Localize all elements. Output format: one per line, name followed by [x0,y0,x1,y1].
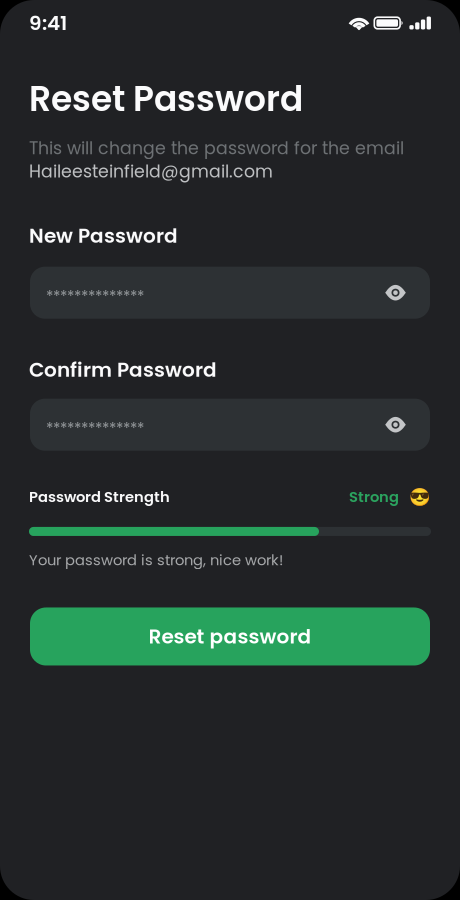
staticText: 😎 [399,485,431,509]
staticText: 9:41 [29,9,67,37]
staticText: Confirm Password [29,356,217,384]
staticText: Reset password [148,622,311,650]
staticText: Your password is strong, nice work! [29,550,283,570]
staticText: ************** [46,286,144,307]
button[interactable]: Show password [362,399,430,451]
staticText: Strong [349,487,399,507]
staticText: Password Strength [29,487,170,507]
staticText: This will change the password for the em… [29,136,404,160]
staticText: Haileesteinfield@gmail.com [29,159,273,184]
staticText: Reset Password [29,75,303,123]
button[interactable]: Show password [362,267,430,319]
button[interactable]: Reset password [30,607,430,665]
staticText: New Password [29,222,178,250]
staticText: ************** [46,418,144,439]
